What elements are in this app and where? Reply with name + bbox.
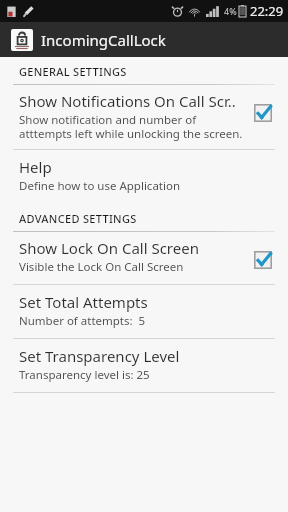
button[interactable]: Set Total Attempts [0,285,288,338]
staticText: Show Notifications On Call Scr.. [19,91,236,111]
button[interactable]: Toggle Show Notifications On Call Scr.. [253,103,273,123]
staticText: Show Lock On Call Screen [19,238,199,258]
staticText: Define how to use Application [19,178,181,194]
button[interactable]: Show Lock On Call Screen [0,232,288,284]
button[interactable]: Help [0,150,288,203]
staticText: 4% [224,5,237,17]
staticText: 22:29 [250,2,284,20]
staticText: ADVANCED SETTINGS [19,211,137,226]
staticText: Set Total Attempts [19,292,148,312]
button[interactable]: Show Notifications On Call Scr.. [0,85,288,149]
staticText: Transparency level is: 25 [19,367,150,383]
button[interactable]: Set Transparency Level [0,339,288,392]
staticText: Number of attempts: 5 [19,313,146,329]
staticText: Set Transparency Level [19,346,180,366]
button[interactable]: Toggle Show Lock On Call Screen [253,250,273,270]
staticText: Show notification and number of atttempt… [19,112,247,141]
staticText: Visible the Lock On Call Screen [19,259,184,275]
staticText: Help [19,157,52,177]
staticText: IncomingCallLock [41,30,166,50]
staticText: GENERAL SETTINGS [19,64,127,79]
